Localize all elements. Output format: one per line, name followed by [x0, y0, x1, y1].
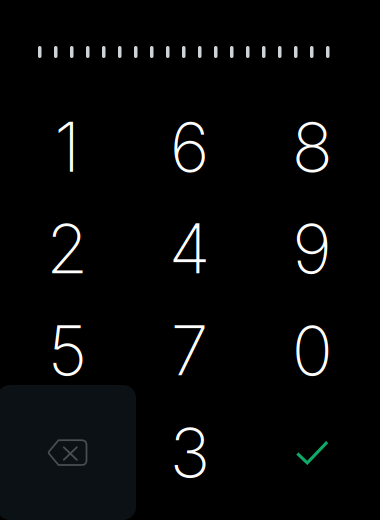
button[interactable]: 9: [251, 198, 373, 299]
button[interactable]: 0: [251, 300, 373, 401]
button[interactable]: 8: [251, 96, 373, 198]
staticText: 2: [46, 207, 88, 290]
staticText: 0: [292, 309, 333, 392]
button[interactable]: Confirm passcode: [251, 402, 373, 503]
staticText: 6: [170, 106, 210, 188]
button[interactable]: 3: [128, 402, 251, 503]
staticText: 8: [292, 106, 333, 188]
staticText: 7: [171, 309, 209, 392]
staticText: 9: [292, 207, 332, 290]
staticText: 1: [54, 106, 80, 188]
staticText: 4: [169, 207, 211, 290]
button[interactable]: 4: [128, 198, 251, 299]
staticText: 3: [170, 411, 210, 494]
button[interactable]: 7: [128, 300, 251, 401]
button[interactable]: Delete: [6, 402, 128, 503]
button[interactable]: 1: [6, 96, 128, 198]
button[interactable]: 6: [128, 96, 251, 198]
button[interactable]: 2: [6, 198, 128, 299]
button[interactable]: 5: [6, 300, 128, 401]
staticText: 5: [48, 309, 87, 392]
